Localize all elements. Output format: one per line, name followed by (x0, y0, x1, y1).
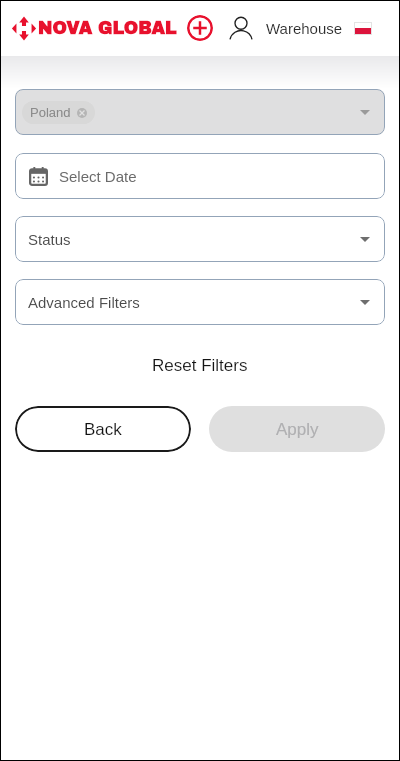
button[interactable]: Advanced Filters (15, 279, 385, 325)
button[interactable]: Back (15, 406, 191, 452)
button[interactable]: Warehouse (229, 17, 372, 40)
button[interactable]: Select Date (15, 153, 385, 199)
staticText: Apply (276, 420, 319, 439)
staticText: Warehouse (266, 20, 343, 37)
staticText: Select Date (59, 168, 137, 185)
staticText: Reset Filters (152, 356, 248, 375)
button[interactable]: Reset Filters (144, 352, 256, 379)
button[interactable]: Poland (15, 89, 385, 135)
staticText: Back (84, 420, 122, 439)
button[interactable]: Apply (209, 406, 385, 452)
staticText: Poland (30, 105, 71, 120)
staticText: Advanced Filters (28, 294, 140, 311)
button[interactable]: Status (15, 216, 385, 262)
button[interactable]: Add (187, 15, 213, 41)
staticText: Status (28, 231, 71, 248)
staticText: NOVA GLOBAL (38, 19, 177, 38)
